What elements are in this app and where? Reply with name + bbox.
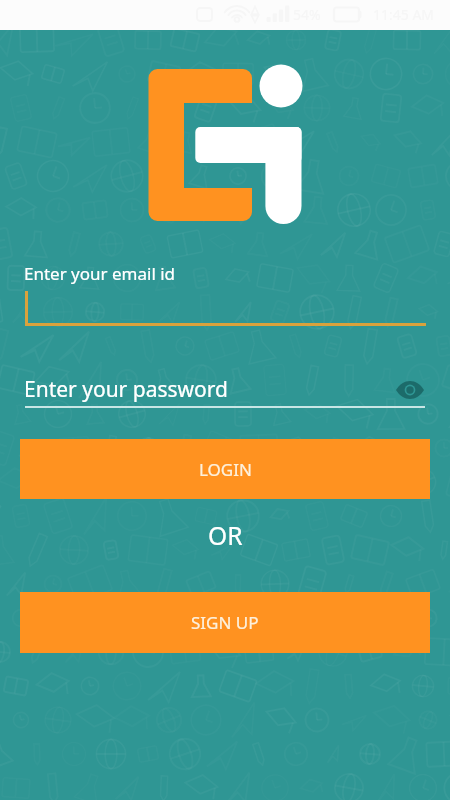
button[interactable]: Enter your email id: [20, 255, 430, 327]
button[interactable]: Show password: [392, 375, 428, 405]
staticText: SIGN UP: [191, 611, 259, 634]
button[interactable]: Enter your password: [20, 370, 430, 411]
staticText: OR: [208, 519, 243, 552]
staticText: Enter your password: [24, 375, 228, 404]
staticText: Enter your email id: [24, 262, 176, 285]
button[interactable]: SIGN UP: [20, 592, 430, 653]
button[interactable]: LOGIN: [20, 439, 430, 499]
staticText: LOGIN: [199, 458, 252, 481]
